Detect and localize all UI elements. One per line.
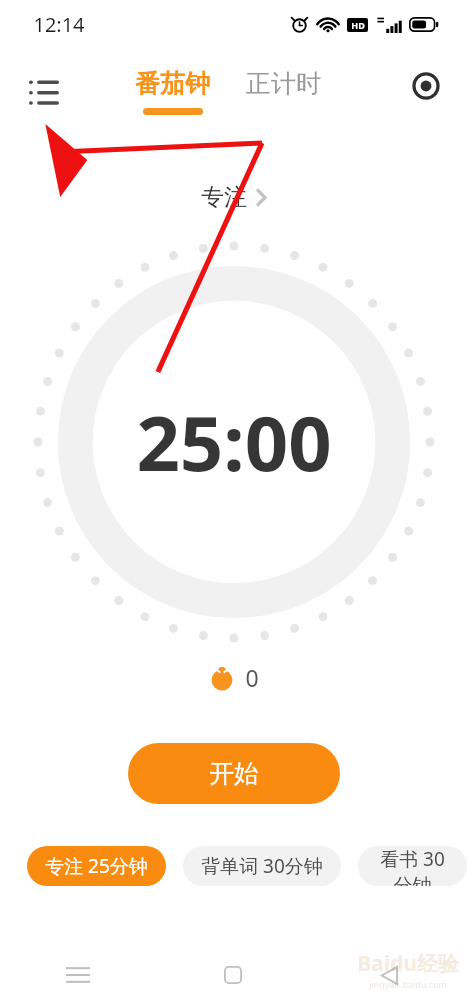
button[interactable]: 看书 30分钟: [358, 846, 467, 886]
staticText: jingyan.baidu.com: [369, 978, 447, 990]
button[interactable]: 开始: [128, 743, 340, 804]
staticText: 12:14: [33, 11, 85, 38]
button[interactable]: Task list: [16, 64, 72, 120]
staticText: 25:00: [136, 390, 332, 494]
staticText: 番茄钟: [135, 68, 210, 99]
button[interactable]: 专注 25分钟: [27, 846, 166, 886]
staticText: 看书 30分钟: [376, 846, 449, 886]
staticText: 0: [245, 662, 259, 693]
button[interactable]: Back: [311, 950, 467, 1000]
button[interactable]: 背单词 30分钟: [183, 846, 341, 886]
staticText: 专注 25分钟: [45, 853, 148, 879]
staticText: Baidu经验: [357, 949, 459, 978]
staticText: 开始: [209, 758, 259, 789]
button[interactable]: 番茄钟: [127, 64, 218, 119]
staticText: 正计时: [246, 68, 321, 99]
staticText: 背单词 30分钟: [201, 853, 323, 879]
button[interactable]: Statistics: [401, 61, 451, 111]
staticText: 专注: [201, 183, 247, 212]
button[interactable]: 专注: [191, 179, 277, 216]
button[interactable]: Recent apps: [0, 950, 155, 1000]
staticText: HD: [351, 19, 365, 31]
button[interactable]: 正计时: [238, 64, 329, 103]
button[interactable]: Home: [155, 950, 311, 1000]
